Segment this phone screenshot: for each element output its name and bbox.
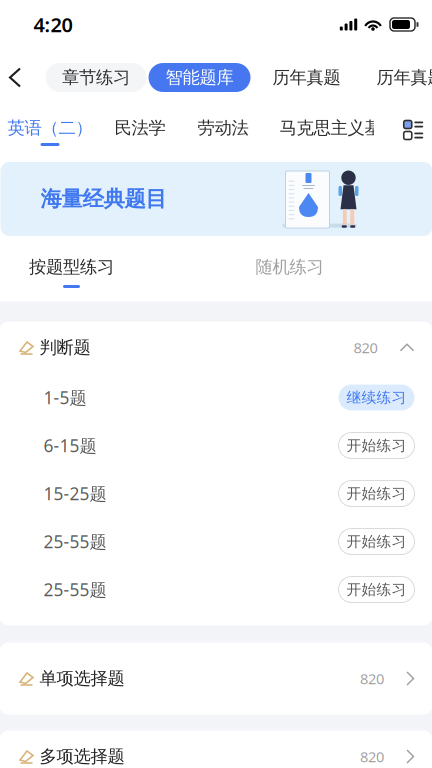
button[interactable]: 劳动法 <box>197 105 248 155</box>
button[interactable]: 英语（二） <box>7 105 92 155</box>
button[interactable]: 开始练习 <box>338 576 414 602</box>
staticText: 820 <box>360 669 384 688</box>
staticText: 历年真题 <box>376 67 432 88</box>
button[interactable]: 单项选择题 <box>0 652 432 704</box>
button[interactable]: 判断题 <box>0 321 432 373</box>
staticText: 开始练习 <box>346 484 406 502</box>
staticText: 智能题库 <box>165 67 233 88</box>
button[interactable]: 继续练习 <box>338 384 414 410</box>
staticText: 开始练习 <box>346 580 406 598</box>
button[interactable]: 开始练习 <box>338 432 414 458</box>
button[interactable]: 随机练习 <box>215 248 363 298</box>
staticText: 章节练习 <box>62 67 130 88</box>
staticText: 开始练习 <box>346 532 406 550</box>
staticText: 劳动法 <box>197 117 248 139</box>
staticText: 820 <box>353 338 377 357</box>
button[interactable]: 返回 <box>1 57 29 97</box>
staticText: 4:20 <box>33 11 72 38</box>
staticText: 随机练习 <box>255 256 323 278</box>
staticText: 25-55题 <box>43 578 106 601</box>
staticText: 6-15题 <box>43 434 96 457</box>
button[interactable]: 历年真题 <box>271 63 341 92</box>
button[interactable]: 开始练习 <box>338 480 414 506</box>
staticText: 马克思主义基 <box>279 117 381 139</box>
staticText: 开始练习 <box>346 436 406 454</box>
staticText: 历年真题 <box>272 67 340 88</box>
staticText: 民法学 <box>114 117 165 139</box>
staticText: 按题型练习 <box>29 256 114 278</box>
staticText: 15-25题 <box>43 482 106 505</box>
staticText: 继续练习 <box>346 388 406 406</box>
button[interactable]: 马克思主义基 <box>273 105 373 155</box>
staticText: 英语（二） <box>7 117 92 139</box>
staticText: 多项选择题 <box>39 746 124 767</box>
staticText: 1-5题 <box>43 386 86 409</box>
staticText: 判断题 <box>39 337 90 358</box>
button[interactable]: 章节练习 <box>45 63 146 92</box>
staticText: 25-55题 <box>43 530 106 553</box>
button[interactable]: 开始练习 <box>338 528 414 554</box>
button[interactable]: 多项选择题 <box>0 730 432 768</box>
staticText: 单项选择题 <box>39 668 124 689</box>
button[interactable]: 全部科目 <box>396 105 430 155</box>
button[interactable]: 历年真题 <box>375 63 432 92</box>
button[interactable]: 智能题库 <box>148 63 250 92</box>
button[interactable]: 民法学 <box>114 105 165 155</box>
staticText: 820 <box>360 747 384 766</box>
button[interactable]: 按题型练习 <box>0 248 145 298</box>
staticText: 海量经典题目 <box>40 186 166 212</box>
